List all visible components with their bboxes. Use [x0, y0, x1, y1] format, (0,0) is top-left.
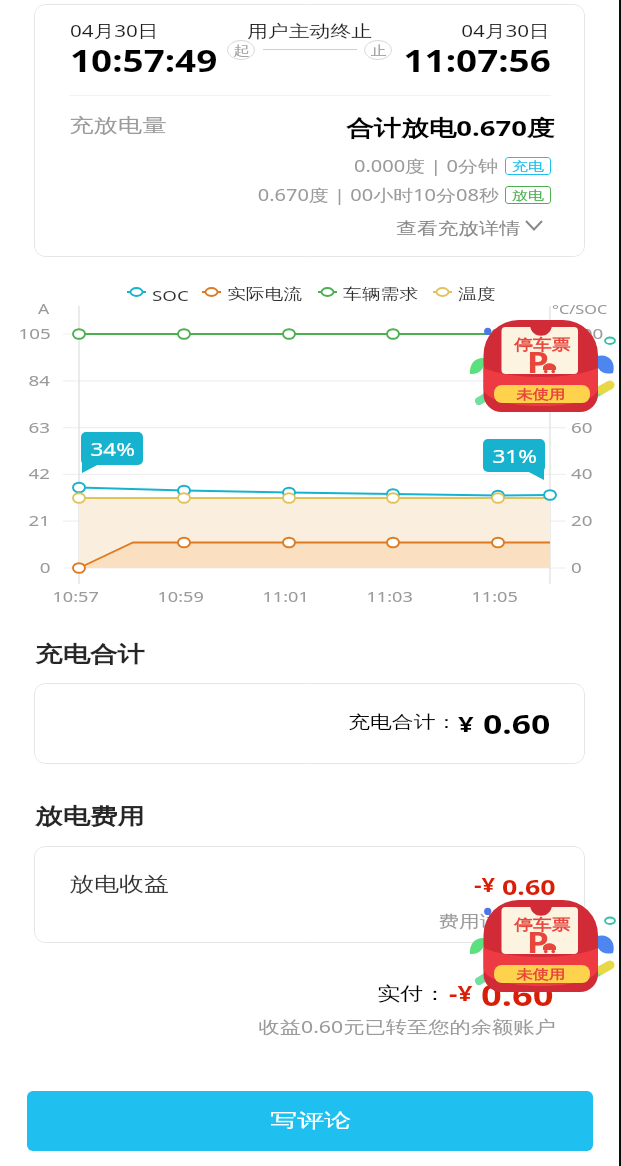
staticText: 实付：: [377, 982, 447, 1005]
staticText: 10:57:49: [70, 40, 217, 80]
staticText: 105: [18, 323, 51, 343]
staticText: 0.60: [481, 975, 553, 1014]
staticText: 查看充放详情: [396, 218, 520, 239]
staticText: SOC: [152, 285, 189, 305]
staticText: 20: [571, 510, 593, 530]
staticText: 10:57: [52, 586, 100, 606]
staticText: 11:01: [262, 586, 310, 606]
button[interactable]: [388, 214, 546, 240]
staticText: P: [527, 923, 549, 961]
button[interactable]: [34, 846, 585, 943]
button[interactable]: [430, 908, 550, 934]
staticText: 0.60: [502, 872, 556, 901]
staticText: 34%: [90, 437, 135, 462]
staticText: 合计放电0.670度: [346, 112, 555, 142]
staticText: 63: [28, 417, 51, 437]
staticText: 未使用: [516, 966, 565, 982]
button[interactable]: [34, 4, 585, 257]
staticText: 用户主动终止: [247, 21, 373, 42]
staticText: 写评论: [270, 1109, 351, 1133]
staticText: 0: [571, 557, 582, 577]
staticText: 04月30日: [461, 19, 550, 42]
staticText: P: [527, 343, 549, 381]
staticText: 止: [370, 42, 387, 58]
button[interactable]: [34, 683, 585, 764]
staticText: 停车票: [514, 916, 570, 935]
staticText: -¥: [449, 979, 473, 1008]
staticText: 收益0.60元已转至您的余额账户: [258, 1015, 556, 1038]
other: 停车票 未使用: [470, 895, 618, 997]
staticText: 04月30日: [70, 19, 159, 42]
staticText: 温度: [458, 285, 495, 304]
staticText: 11:07:56: [403, 40, 551, 80]
staticText: 未使用: [516, 386, 565, 402]
button[interactable]: 写评论: [27, 1091, 593, 1151]
staticText: A: [38, 299, 49, 318]
staticText: 实际电流: [227, 285, 302, 304]
staticText: 充放电量: [69, 113, 166, 138]
staticText: 充电合计: [35, 641, 145, 669]
staticText: 11:05: [471, 586, 519, 606]
staticText: 放电费用: [35, 803, 145, 831]
staticText: 充电: [512, 158, 544, 174]
staticText: 停车票: [514, 336, 570, 355]
staticText: 0: [40, 557, 51, 577]
staticText: 放电收益: [69, 872, 169, 897]
staticText: 100: [571, 323, 603, 343]
staticText: 80: [571, 370, 593, 390]
staticText: 费用详情: [438, 911, 521, 932]
staticText: 11:03: [366, 586, 414, 606]
other: 停车票 未使用: [470, 315, 618, 417]
staticText: 放电: [512, 187, 544, 203]
staticText: °C/SOC: [552, 300, 608, 318]
staticText: 21: [28, 510, 51, 530]
staticText: 充电合计：: [348, 711, 458, 733]
staticText: 0.60: [483, 705, 550, 742]
staticText: 车辆需求: [343, 285, 418, 304]
staticText: 60: [571, 417, 593, 437]
staticText: ¥: [458, 708, 474, 738]
staticText: 0.670度 | 00小时10分08秒: [258, 184, 499, 206]
staticText: 84: [28, 370, 51, 390]
staticText: 10:59: [157, 586, 205, 606]
staticText: 42: [28, 463, 51, 483]
staticText: -¥: [474, 872, 495, 898]
staticText: 40: [571, 463, 593, 483]
staticText: 0.000度 | 0分钟: [354, 155, 499, 177]
staticText: 31%: [492, 444, 537, 469]
staticText: 起: [233, 42, 250, 58]
